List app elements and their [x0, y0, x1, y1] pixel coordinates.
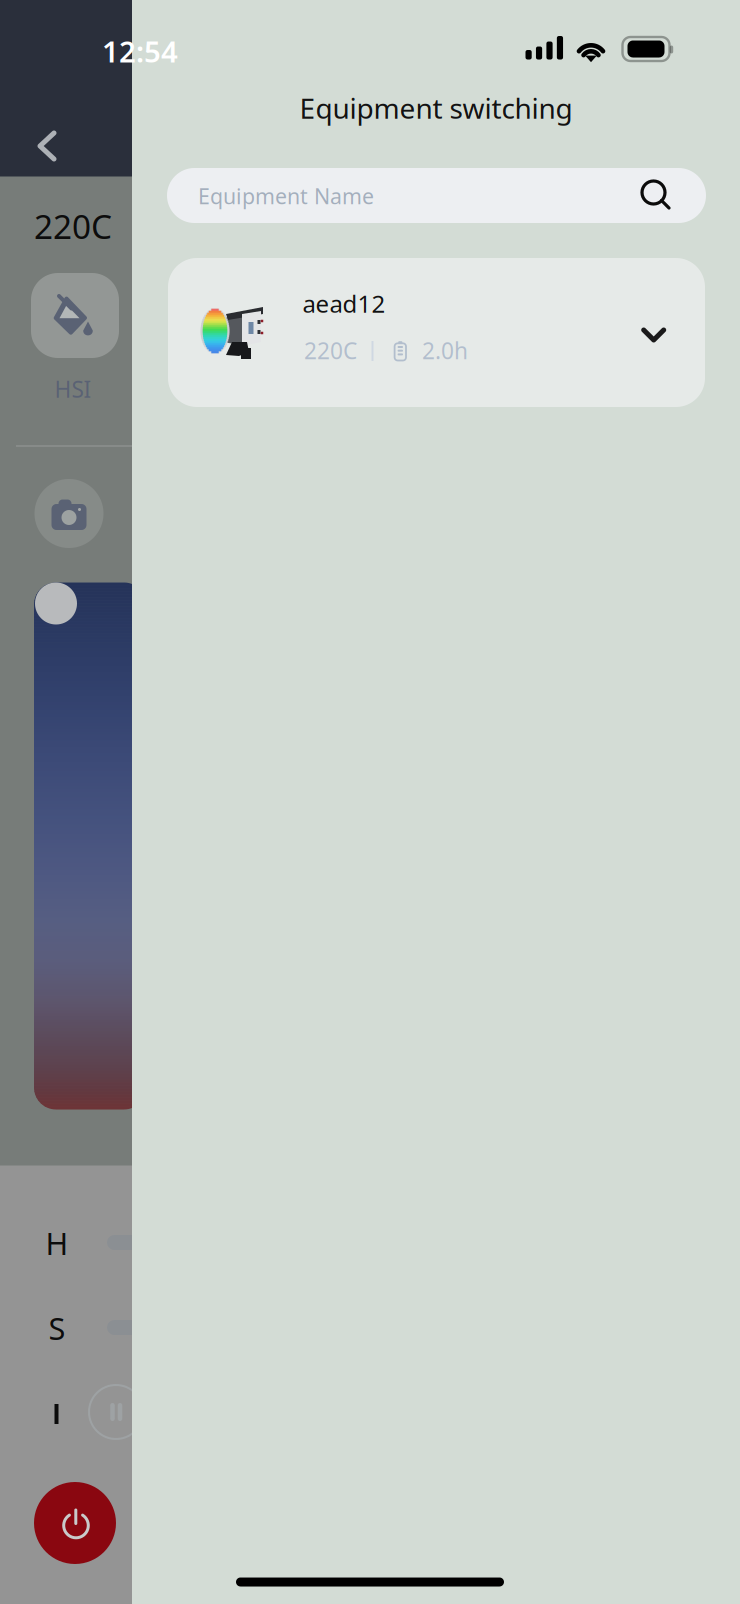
staticText: 2.0h [422, 335, 468, 365]
staticText: 12:54 [102, 31, 178, 70]
staticText: Equipment Name [198, 182, 374, 210]
staticText: 220C [304, 335, 357, 365]
staticText: Equipment switching [299, 89, 572, 127]
staticText: 220C [34, 204, 112, 248]
button[interactable]: aead12 [168, 258, 705, 407]
button[interactable]: Equipment Name [167, 168, 706, 223]
staticText: aead12 [302, 288, 385, 319]
staticText: HSI [54, 374, 91, 404]
staticText: H [45, 1223, 68, 1263]
staticText: S [48, 1308, 65, 1348]
